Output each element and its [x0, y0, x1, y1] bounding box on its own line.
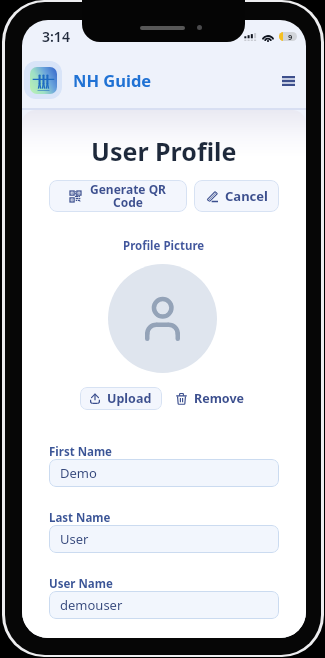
button[interactable]: Upload	[80, 387, 162, 410]
staticText: User Name	[49, 576, 113, 592]
button[interactable]: User	[49, 525, 279, 553]
button[interactable]: Demo	[49, 459, 279, 487]
button[interactable]: Menu	[272, 65, 304, 97]
staticText: Generate QR Code	[90, 181, 166, 211]
staticText: User	[60, 530, 89, 548]
staticText: 9	[288, 32, 293, 41]
button[interactable]: Cancel	[194, 180, 279, 212]
button[interactable]: Remove	[172, 386, 249, 411]
staticText: 3:14	[42, 27, 70, 46]
button[interactable]: demouser	[49, 591, 279, 619]
staticText: User Profile	[91, 134, 237, 168]
staticText: Remove	[194, 390, 245, 407]
staticText: Profile Picture	[123, 238, 205, 254]
button[interactable]: Generate QR Code	[49, 180, 187, 212]
staticText: Last Name	[49, 510, 111, 526]
staticText: NH Guide	[73, 69, 152, 91]
staticText: demouser	[60, 596, 123, 614]
staticText: Cancel	[225, 187, 268, 205]
staticText: Upload	[107, 390, 152, 407]
staticText: First Name	[49, 444, 112, 460]
staticText: Demo	[60, 464, 97, 482]
